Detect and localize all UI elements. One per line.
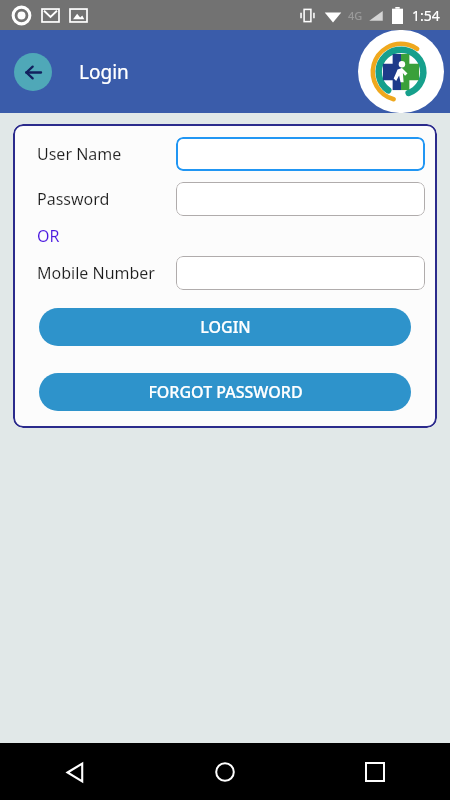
button[interactable]: User Name <box>176 137 425 171</box>
staticText: LOGIN <box>200 316 251 338</box>
staticText: User Name <box>37 143 176 165</box>
button[interactable]: Home <box>201 748 249 796</box>
staticText: 1:54 <box>412 6 440 25</box>
staticText: 4G <box>348 8 363 23</box>
button[interactable]: Password <box>176 182 425 216</box>
button[interactable]: Recent apps <box>351 748 399 796</box>
staticText: Password <box>37 188 176 210</box>
button[interactable]: Back <box>51 748 99 796</box>
staticText: Login <box>79 59 129 85</box>
button[interactable]: FORGOT PASSWORD <box>39 373 411 411</box>
staticText: FORGOT PASSWORD <box>148 381 303 403</box>
button[interactable]: LOGIN <box>39 308 411 346</box>
button[interactable]: App logo <box>358 30 444 113</box>
staticText: OR <box>37 225 60 247</box>
button[interactable]: Mobile Number <box>176 256 425 290</box>
button[interactable]: Back <box>14 53 52 91</box>
staticText: Mobile Number <box>37 262 176 284</box>
